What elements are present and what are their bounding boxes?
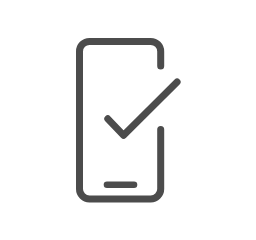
button[interactable]: Phone with check mark [0,0,256,240]
